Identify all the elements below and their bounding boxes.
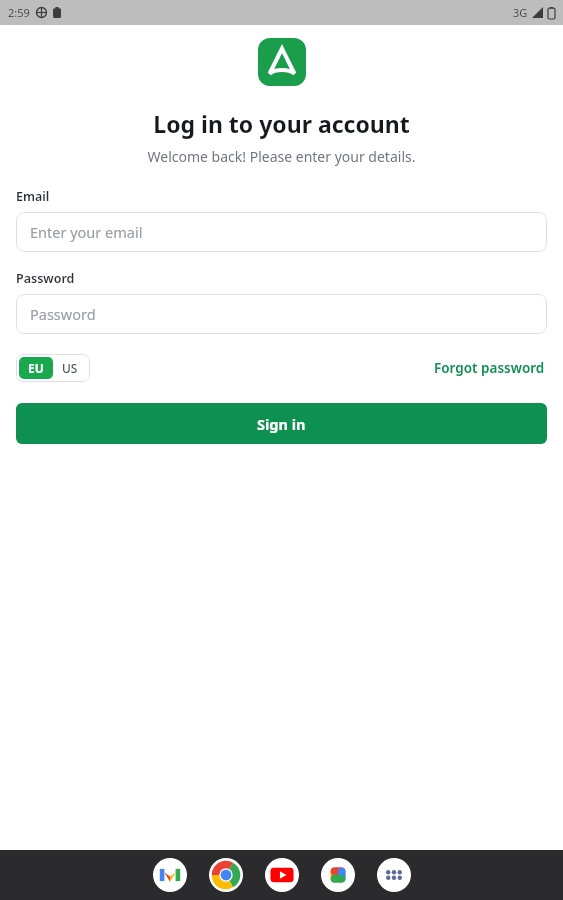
button[interactable]: EU — [19, 357, 53, 379]
button[interactable]: Forgot password — [432, 355, 547, 381]
staticText: Sign in — [257, 414, 306, 434]
other: App logo — [258, 38, 306, 86]
button[interactable]: All apps — [377, 858, 411, 892]
staticText: Forgot password — [434, 359, 545, 377]
button[interactable]: Password — [16, 294, 547, 334]
staticText: Password — [16, 270, 75, 287]
staticText: Password — [30, 304, 96, 324]
button[interactable]: Gmail — [153, 858, 187, 892]
button[interactable]: Google Photos — [321, 858, 355, 892]
staticText: US — [62, 360, 78, 376]
button[interactable]: Sign in — [16, 403, 547, 444]
button[interactable]: Enter your email — [16, 212, 547, 252]
staticText: Welcome back! Please enter your details. — [0, 147, 563, 166]
staticText: Email — [16, 188, 50, 205]
button[interactable]: Chrome — [209, 858, 243, 892]
staticText: Enter your email — [30, 222, 143, 242]
button[interactable]: YouTube — [265, 858, 299, 892]
staticText: 2:59 — [8, 5, 30, 20]
staticText: 3G — [513, 5, 528, 20]
staticText: Log in to your account — [0, 108, 563, 139]
button[interactable]: US — [53, 357, 87, 379]
staticText: EU — [28, 360, 44, 376]
